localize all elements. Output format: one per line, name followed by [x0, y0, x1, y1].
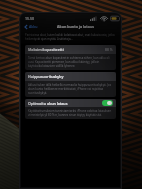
staticText: 88 %	[105, 47, 113, 52]
staticText: Huippusuorituskyky	[28, 74, 113, 79]
staticText: Paristoissa akut, kuten kaikki ladattava…	[25, 33, 116, 41]
button[interactable]: Takaisin Akku-näyttöön	[24, 24, 40, 29]
staticText: Käyttötottumuksien tunnistamiseksi iPhon…	[28, 109, 113, 117]
staticText: Akkusi tukee tällä hetkellä normaalia hu…	[28, 83, 113, 95]
button[interactable]: Huippusuorituskyky	[25, 72, 116, 81]
button[interactable]: Optimoitu akun lataus	[25, 99, 116, 107]
staticText: Akun kunto ja lataus	[57, 24, 95, 29]
staticText: Tämä kertoo akun kapasiteetin suhteessa …	[28, 56, 113, 68]
staticText: Maksimikapasiteetti	[28, 47, 105, 52]
button[interactable]: Maksimikapasiteetti	[25, 45, 116, 54]
staticText: Optimoitu akun lataus	[28, 101, 102, 106]
button[interactable]: Optimoitu akun lataus päällä	[102, 100, 113, 106]
staticText: Akku	[29, 24, 38, 29]
staticText: 15.50	[25, 16, 34, 21]
